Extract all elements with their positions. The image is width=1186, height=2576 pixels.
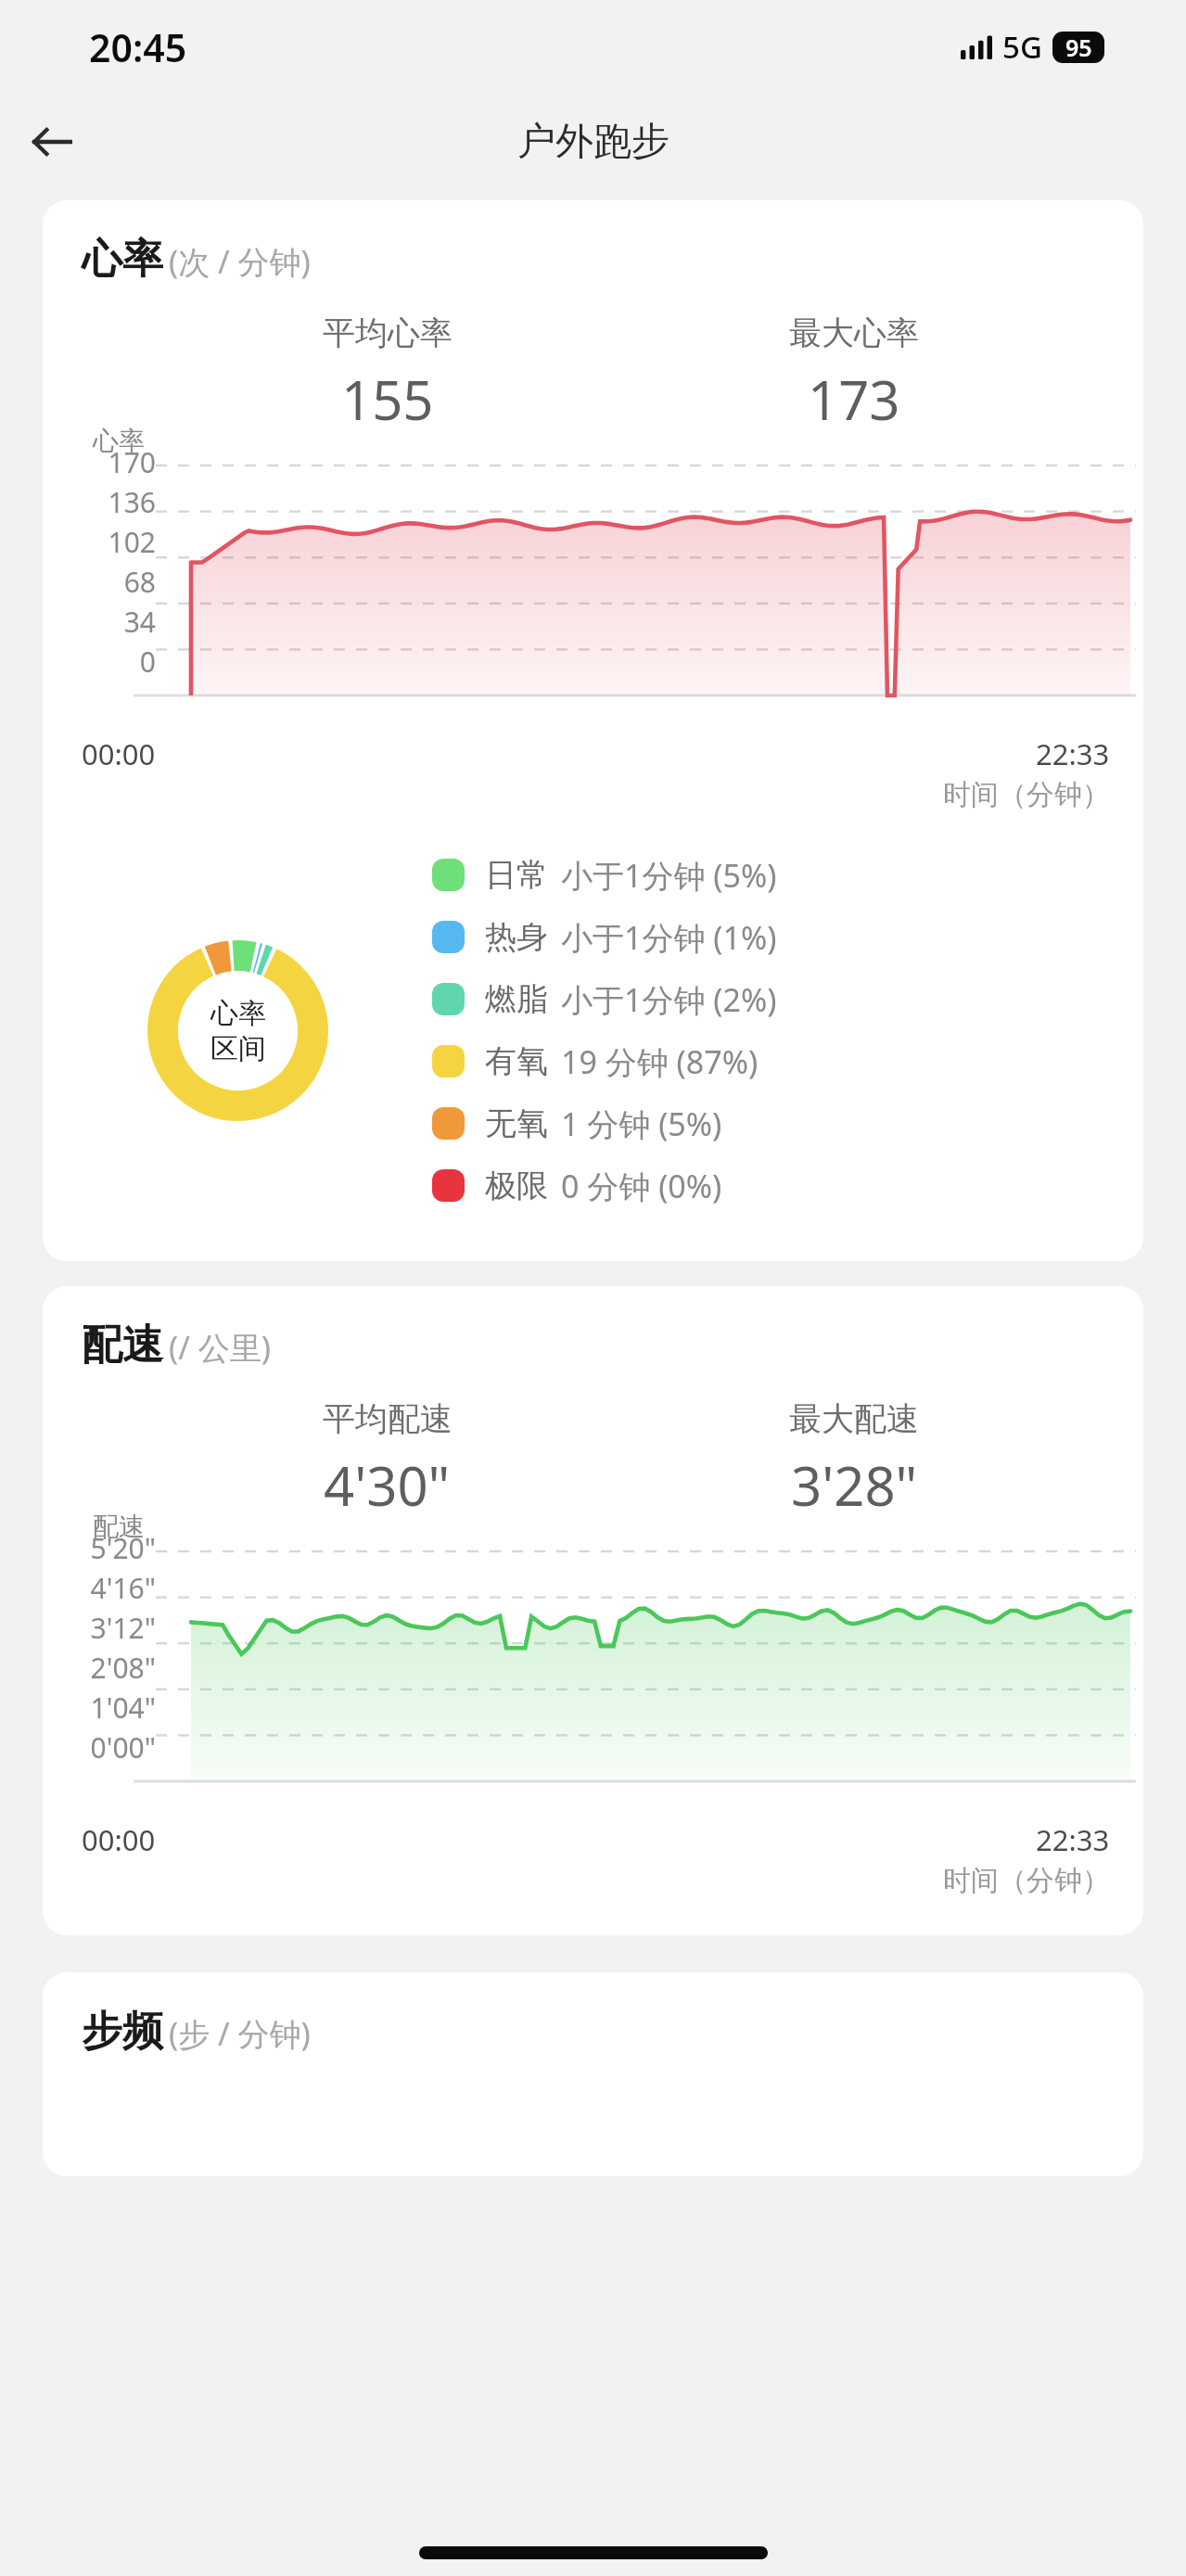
staticText: 5'20" (90, 1529, 156, 1567)
staticText: 20:45 (89, 21, 187, 73)
staticText: 小于1分钟 (5%) (561, 854, 777, 897)
staticText: 极限 (485, 1166, 548, 1205)
staticText: 最大心率 (789, 312, 919, 353)
staticText: 173 (808, 363, 900, 436)
staticText: 34 (123, 603, 156, 641)
staticText: 00:00 (82, 1820, 156, 1859)
staticText: 小于1分钟 (2%) (561, 978, 777, 1021)
staticText: 小于1分钟 (1%) (561, 916, 777, 959)
staticText: 最大配速 (789, 1398, 919, 1439)
staticText: 日常 (485, 855, 548, 895)
staticText: 5G (1002, 26, 1042, 68)
staticText: 0 (139, 643, 156, 681)
staticText: 1 分钟 (5%) (561, 1103, 722, 1145)
staticText: 95 (1065, 32, 1092, 63)
staticText: (次 / 分钟) (169, 240, 311, 283)
staticText: 户外跑步 (517, 118, 670, 166)
staticText: 配速 (93, 1511, 145, 1543)
staticText: 4'16" (90, 1569, 156, 1607)
staticText: 心率 (82, 234, 163, 285)
staticText: 4'30" (324, 1448, 451, 1522)
staticText: 热身 (485, 917, 548, 957)
staticText: 22:33 (1036, 734, 1110, 773)
staticText: 68 (123, 563, 156, 601)
staticText: 心率 (210, 996, 266, 1031)
staticText: 区间 (210, 1031, 266, 1066)
staticText: 0 分钟 (0%) (561, 1165, 722, 1207)
staticText: 时间（分钟） (943, 1863, 1110, 1898)
staticText: (步 / 分钟) (169, 2012, 311, 2055)
staticText: 22:33 (1036, 1820, 1110, 1859)
staticText: 3'28" (791, 1448, 918, 1522)
staticText: 步频 (82, 2006, 163, 2057)
staticText: 有氧 (485, 1041, 548, 1081)
staticText: (/ 公里) (169, 1326, 271, 1369)
staticText: 1'04" (90, 1689, 156, 1727)
staticText: 平均心率 (323, 312, 453, 353)
staticText: 155 (341, 363, 434, 436)
staticText: 心率 (93, 425, 145, 457)
staticText: 时间（分钟） (943, 777, 1110, 812)
staticText: 00:00 (82, 734, 156, 773)
staticText: 无氧 (485, 1103, 548, 1143)
staticText: 0'00" (90, 1728, 156, 1766)
staticText: 配速 (82, 1320, 163, 1371)
button[interactable]: 返回 (17, 107, 87, 177)
staticText: 平均配速 (323, 1398, 453, 1439)
staticText: 102 (108, 523, 156, 561)
staticText: 2'08" (90, 1649, 156, 1687)
staticText: 19 分钟 (87%) (561, 1040, 759, 1083)
staticText: 170 (108, 443, 156, 481)
staticText: 燃脂 (485, 979, 548, 1019)
staticText: 3'12" (90, 1609, 156, 1647)
staticText: 136 (108, 483, 156, 521)
